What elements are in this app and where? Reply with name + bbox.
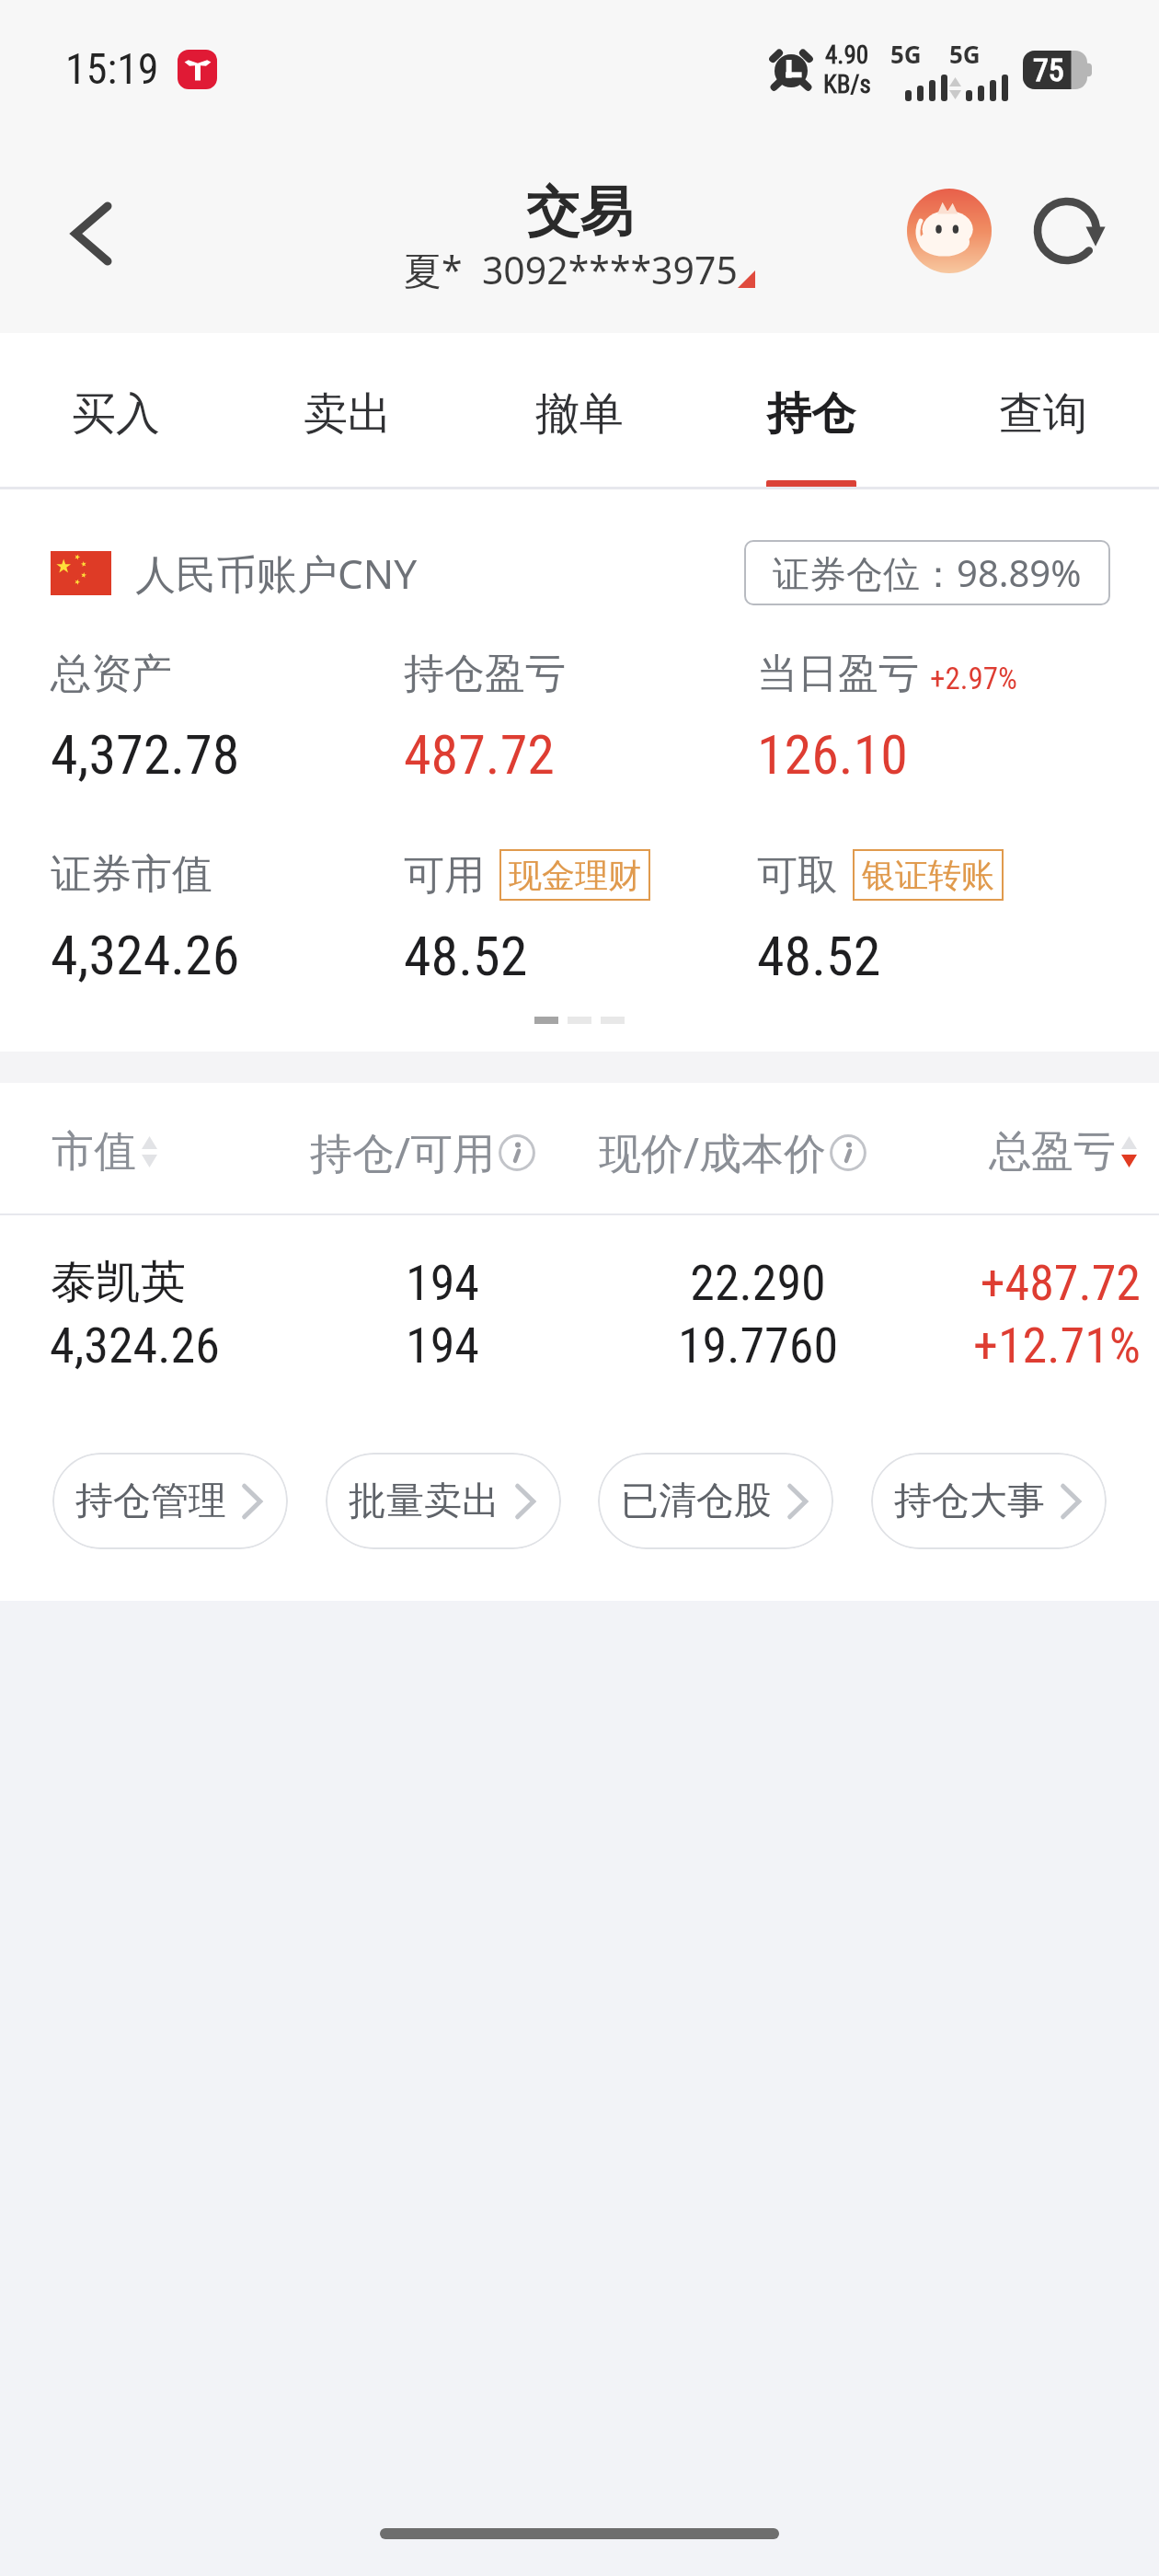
staticText: 4,324.26 [50, 1317, 220, 1374]
staticText: 证券市值 [51, 849, 212, 900]
staticText: 487.72 [404, 722, 555, 787]
button[interactable]: Customer service [906, 188, 993, 274]
staticText: +2.97% [930, 661, 1017, 696]
staticText: 查询 [999, 386, 1087, 442]
button[interactable]: Refresh [1027, 191, 1107, 270]
staticText: 48.52 [404, 924, 528, 988]
staticText: 卖出 [304, 386, 392, 442]
button[interactable]: 银证转账 [853, 849, 1004, 901]
staticText: 5G [890, 38, 922, 70]
staticText: 市值 [52, 1125, 136, 1179]
staticText: 48.52 [757, 924, 881, 988]
staticText: 持仓/可用 [310, 1123, 496, 1181]
staticText: 持仓大事 [894, 1478, 1045, 1525]
staticText: 15:19 [65, 44, 159, 94]
staticText: 5G [949, 38, 981, 70]
button[interactable]: 卖出 [232, 333, 464, 489]
button[interactable]: 持仓大事 [871, 1453, 1107, 1549]
staticText: +487.72 [0, 1254, 1141, 1312]
staticText: 75 [1033, 52, 1064, 88]
staticText: 可取 [757, 850, 838, 901]
button[interactable]: 撤单 [464, 333, 695, 489]
staticText: 当日盈亏 [757, 649, 919, 699]
staticText: 持仓盈亏 [404, 649, 566, 699]
staticText: 4.90 [825, 40, 869, 70]
staticText: 可用 [404, 850, 485, 901]
button[interactable]: 泰凯英 [0, 1215, 1159, 1453]
staticText: 22.290 [620, 1254, 896, 1312]
button[interactable]: 持仓 [695, 333, 927, 489]
staticText: 194 [350, 1317, 534, 1374]
staticText: +12.71% [0, 1317, 1141, 1374]
staticText: 交易 [526, 178, 633, 246]
staticText: 现价/成本价 [599, 1123, 827, 1181]
staticText: KB/s [823, 70, 871, 99]
button[interactable]: 批量卖出 [326, 1453, 561, 1549]
staticText: 4,372.78 [51, 722, 240, 787]
staticText: 194 [350, 1254, 534, 1312]
staticText: 现金理财 [509, 855, 641, 896]
staticText: 4,324.26 [51, 923, 240, 987]
button[interactable]: Back [40, 182, 143, 285]
button[interactable]: 证券仓位：98.89% [744, 540, 1110, 605]
staticText: 买入 [72, 386, 160, 442]
button[interactable]: 持仓管理 [52, 1453, 288, 1549]
staticText: 证券仓位：98.89% [773, 547, 1082, 598]
staticText: 批量卖出 [349, 1478, 499, 1525]
staticText: 126.10 [757, 722, 908, 787]
staticText: 已清仓股 [621, 1478, 772, 1525]
staticText: 持仓 [767, 386, 855, 442]
staticText: 总资产 [51, 649, 172, 699]
staticText: 撤单 [535, 386, 624, 442]
staticText: 持仓管理 [75, 1478, 226, 1525]
staticText: 泰凯英 [51, 1254, 186, 1311]
button[interactable]: 现金理财 [499, 849, 650, 901]
staticText: 银证转账 [862, 855, 994, 896]
button[interactable]: 查询 [927, 333, 1159, 489]
staticText: 夏* 3092****3975 [404, 244, 738, 295]
button[interactable]: 买入 [0, 333, 232, 489]
staticText: 总盈亏 [989, 1125, 1116, 1179]
button[interactable]: 已清仓股 [598, 1453, 833, 1549]
staticText: 19.7760 [620, 1317, 896, 1374]
staticText: 人民币账户CNY [135, 546, 418, 601]
